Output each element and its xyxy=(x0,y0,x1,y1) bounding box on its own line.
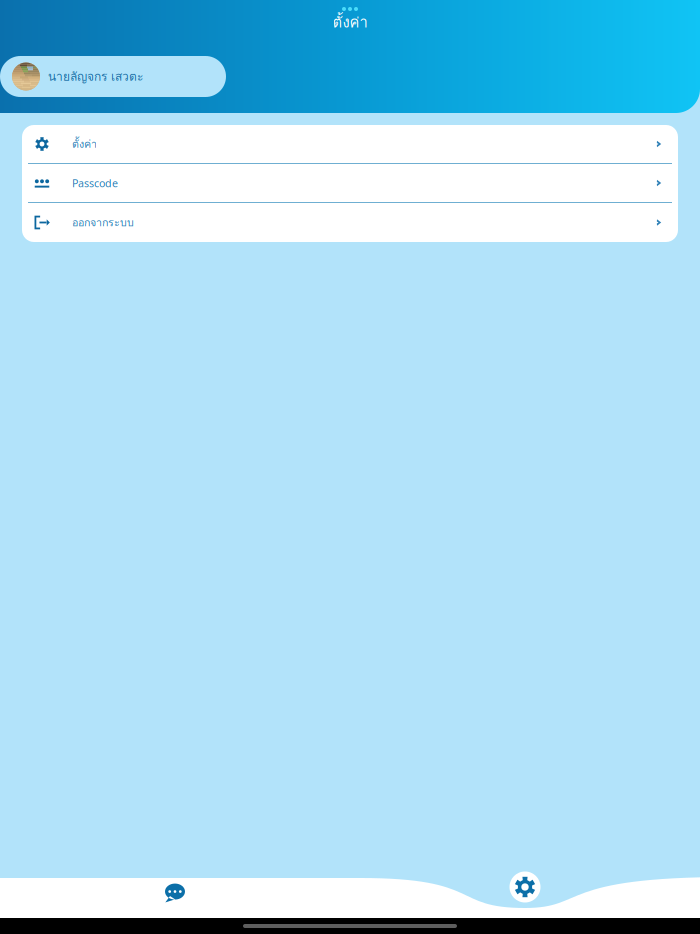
staticText: Passcode xyxy=(72,176,118,190)
button[interactable]: ออกจากระบบ xyxy=(22,203,678,242)
staticText: นายลัญจกร เสวตะ xyxy=(48,67,143,86)
button[interactable]: นายลัญจกร เสวตะ xyxy=(0,56,226,97)
button[interactable]: Chat xyxy=(147,874,203,912)
button[interactable]: ตั้งค่า xyxy=(22,125,678,164)
staticText: ออกจากระบบ xyxy=(72,214,134,231)
button[interactable]: Settings xyxy=(503,865,547,909)
staticText: ตั้งค่า xyxy=(72,136,97,152)
button[interactable]: Passcode xyxy=(22,164,678,203)
staticText: ตั้งค่า xyxy=(332,11,367,34)
